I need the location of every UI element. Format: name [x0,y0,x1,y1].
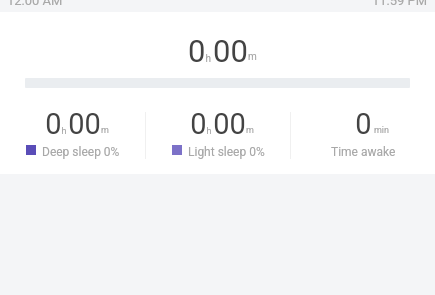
button[interactable]: 0h 00 [0,107,145,159]
staticText: min [372,125,389,136]
staticText: 0h 00 [45,107,101,141]
staticText: 12:00 AM [7,0,63,8]
staticText: 11:59 PM [372,0,428,8]
button[interactable]: 0 [291,107,435,159]
staticText: m [246,125,254,136]
button[interactable]: 0h 00 [146,107,290,159]
staticText: 0h 00 [188,33,248,69]
staticText: Time awake [331,145,396,159]
staticText: Deep sleep 0% [42,145,120,159]
staticText: m [101,125,109,136]
staticText: 0 [355,107,372,141]
staticText: Light sleep 0% [188,145,265,159]
staticText: m [248,51,257,63]
staticText: 0h 00 [190,107,246,141]
